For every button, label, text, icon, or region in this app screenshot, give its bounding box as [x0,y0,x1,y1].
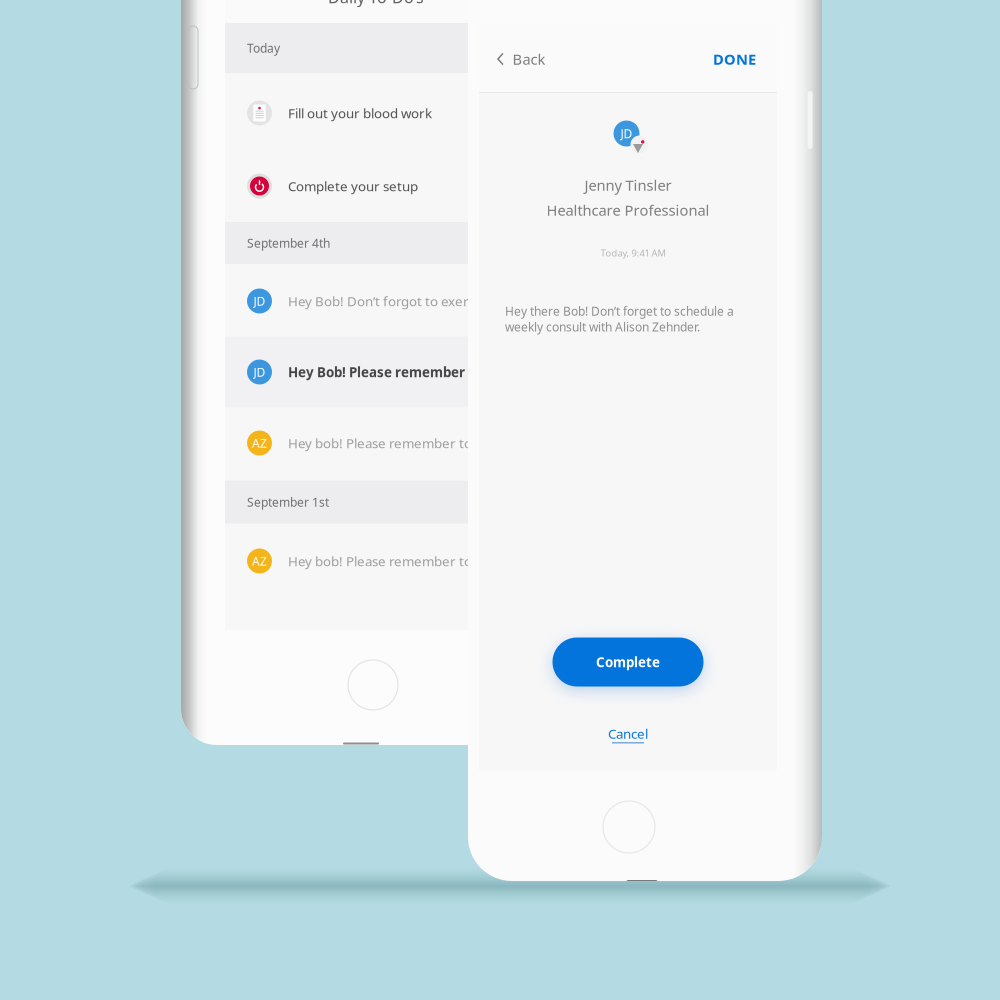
staticText: Cancel [608,725,648,742]
staticText: Complete your setup [288,177,418,195]
button[interactable]: DONE [696,39,756,79]
staticText: AZ [252,553,267,569]
button[interactable]: AZ [225,525,527,596]
staticText: Today, 9:41 AM [600,247,665,259]
staticText: September 4th [247,235,330,251]
staticText: JD [253,293,265,309]
staticText: Hey there Bob! Don’t forget to schedule … [505,303,734,335]
button[interactable]: Cancel [603,723,653,745]
button[interactable]: Complete [552,637,703,686]
staticText: Today [247,40,280,56]
staticText: DONE [713,49,756,69]
button[interactable]: Complete your setup [225,150,527,221]
staticText: Complete [596,653,660,671]
staticText: JD [253,364,265,380]
staticText: Hey bob! Please remember to eat. 12h [288,434,526,452]
staticText: Hey Bob! Don’t forgot to exercise. 8h [288,292,514,310]
button[interactable]: JD [225,336,527,407]
staticText: Daily To-Do’s [328,0,424,8]
staticText: September 1st [247,494,329,510]
button[interactable]: JD [225,265,527,336]
staticText: Hey bob! Please remember to eat. 3 d [288,552,521,570]
button[interactable]: AZ [225,407,527,478]
staticText: Back [512,49,545,69]
button[interactable]: Fill out your blood work [225,77,527,148]
staticText: Fill out your blood work [288,104,432,122]
staticText: JD [620,125,632,141]
staticText: Jenny Tinsler [584,175,671,195]
staticText: Healthcare Professional [546,200,709,220]
staticText: AZ [252,435,267,451]
staticText: Hey Bob! Please remember to walk. 1 [288,363,531,381]
button[interactable]: Back [497,39,561,79]
